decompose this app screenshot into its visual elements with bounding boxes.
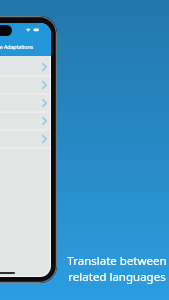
other: Open bbox=[42, 99, 47, 107]
staticText: Translate between bbox=[67, 253, 167, 269]
button[interactable]: Open bbox=[0, 59, 51, 77]
staticText: related languages bbox=[68, 269, 166, 285]
button[interactable]: Open bbox=[0, 131, 51, 149]
other: Open bbox=[42, 63, 47, 71]
other: Open bbox=[42, 81, 47, 89]
button[interactable]: Open bbox=[0, 113, 51, 131]
other: Open bbox=[42, 117, 47, 125]
other: Open bbox=[42, 135, 47, 143]
button[interactable]: Open bbox=[0, 95, 51, 113]
staticText: Phrase Adaptations bbox=[0, 43, 34, 50]
button[interactable]: Open bbox=[0, 77, 51, 95]
